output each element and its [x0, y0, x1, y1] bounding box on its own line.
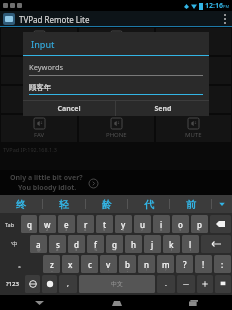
button[interactable]: w [39, 215, 56, 233]
button[interactable]: ! [195, 255, 212, 273]
staticText: 6 [122, 227, 125, 232]
button[interactable]: PAGE - [156, 57, 231, 84]
button[interactable]: VOL + [1, 28, 77, 55]
button[interactable]: m [157, 255, 174, 273]
button[interactable]: 代 [128, 195, 169, 213]
button[interactable]: g [106, 235, 123, 253]
button[interactable]: Language [25, 275, 40, 293]
staticText: : [221, 259, 224, 270]
button[interactable]: 轻 [43, 195, 85, 213]
button[interactable]: b [119, 255, 136, 273]
button[interactable]: h [125, 235, 142, 253]
button[interactable]: Emoji [42, 275, 57, 293]
button[interactable]: j [144, 235, 161, 253]
button[interactable]: 终 [0, 195, 42, 213]
button[interactable]: VOL - [1, 57, 77, 84]
button[interactable]: '中 [1, 235, 28, 253]
button[interactable]: Send [116, 101, 209, 116]
button[interactable]: Hide keyboard [215, 275, 231, 293]
button[interactable]: e [58, 215, 75, 233]
staticText: Tab [5, 221, 15, 228]
button[interactable]: Recent apps [155, 295, 232, 310]
button[interactable]: p [191, 215, 208, 233]
button[interactable]: z [43, 255, 60, 273]
staticText: 7 [141, 227, 144, 232]
button[interactable]: MUTE [156, 115, 231, 142]
staticText: VOL + [31, 44, 48, 52]
button[interactable]: , [59, 275, 77, 293]
button[interactable]: PLAY [79, 57, 154, 84]
button[interactable]: n [138, 255, 155, 273]
button[interactable]: ? [176, 255, 193, 273]
button[interactable]: FAV [1, 115, 77, 142]
button[interactable]: Space [79, 275, 155, 293]
staticText: 12:16 [205, 1, 223, 11]
button[interactable]: s [49, 235, 66, 253]
staticText: v [106, 259, 111, 270]
button[interactable]: More candidates [212, 195, 232, 213]
button[interactable]: o [172, 215, 189, 233]
button[interactable]: Home [78, 295, 155, 310]
staticText: c [88, 259, 92, 270]
staticText: b [125, 259, 130, 270]
button[interactable]: PAGE + [156, 28, 231, 55]
staticText: 9 [179, 227, 182, 232]
staticText: . [165, 279, 167, 289]
button[interactable]: Back [0, 295, 78, 310]
staticText: _ [51, 267, 53, 272]
button[interactable]: STOP [79, 28, 154, 55]
button[interactable]: l [182, 235, 199, 253]
button[interactable]: BACK [1, 86, 77, 113]
staticText: ) [190, 247, 192, 252]
button[interactable]: Tab [1, 215, 19, 233]
button[interactable]: t [96, 215, 113, 233]
button[interactable]: Move cursor [197, 275, 213, 293]
button[interactable]: u [134, 215, 151, 233]
button[interactable]: y [115, 215, 132, 233]
button[interactable]: Enter [201, 235, 231, 253]
button[interactable]: More options [218, 11, 232, 27]
button[interactable]: : [214, 255, 231, 273]
staticText: j [151, 239, 154, 250]
button[interactable]: HOME [79, 86, 154, 113]
button[interactable]: Backspace [210, 215, 231, 233]
button[interactable]: PHONE [79, 115, 154, 142]
button[interactable]: MENU [156, 86, 231, 113]
staticText: FAV [34, 131, 45, 139]
button[interactable]: . [157, 275, 175, 293]
staticText: z [50, 259, 54, 270]
staticText: % [94, 247, 98, 252]
button[interactable]: Cancel [23, 101, 115, 116]
staticText: 终 [16, 198, 26, 211]
staticText: 轻 [59, 198, 69, 211]
staticText: y [121, 219, 126, 230]
staticText: Input [31, 38, 55, 50]
staticText: ?123 [6, 280, 19, 288]
button[interactable]: a [30, 235, 47, 253]
button[interactable]: k [163, 235, 180, 253]
staticText: MUTE [185, 131, 202, 139]
button[interactable]: v [100, 255, 117, 273]
button[interactable]: f [87, 235, 104, 253]
button[interactable]: ?123 [1, 275, 23, 293]
staticText: ? [183, 259, 187, 270]
staticText: - [152, 247, 154, 252]
button[interactable]: r [77, 215, 94, 233]
button[interactable]: i [153, 215, 170, 233]
button[interactable]: d [68, 235, 85, 253]
staticText: , [67, 279, 69, 289]
button[interactable]: Shift [1, 255, 41, 273]
button[interactable]: More info [89, 179, 98, 188]
staticText: o [178, 219, 183, 230]
button[interactable]: 前 [170, 195, 211, 213]
staticText: q [27, 219, 32, 230]
button[interactable]: q [21, 215, 37, 233]
button[interactable]: x [62, 255, 79, 273]
staticText: # [56, 247, 59, 252]
button[interactable]: — [177, 275, 195, 293]
button[interactable]: c [81, 255, 98, 273]
button[interactable]: 龄 [86, 195, 127, 213]
staticText: ! [202, 259, 205, 270]
